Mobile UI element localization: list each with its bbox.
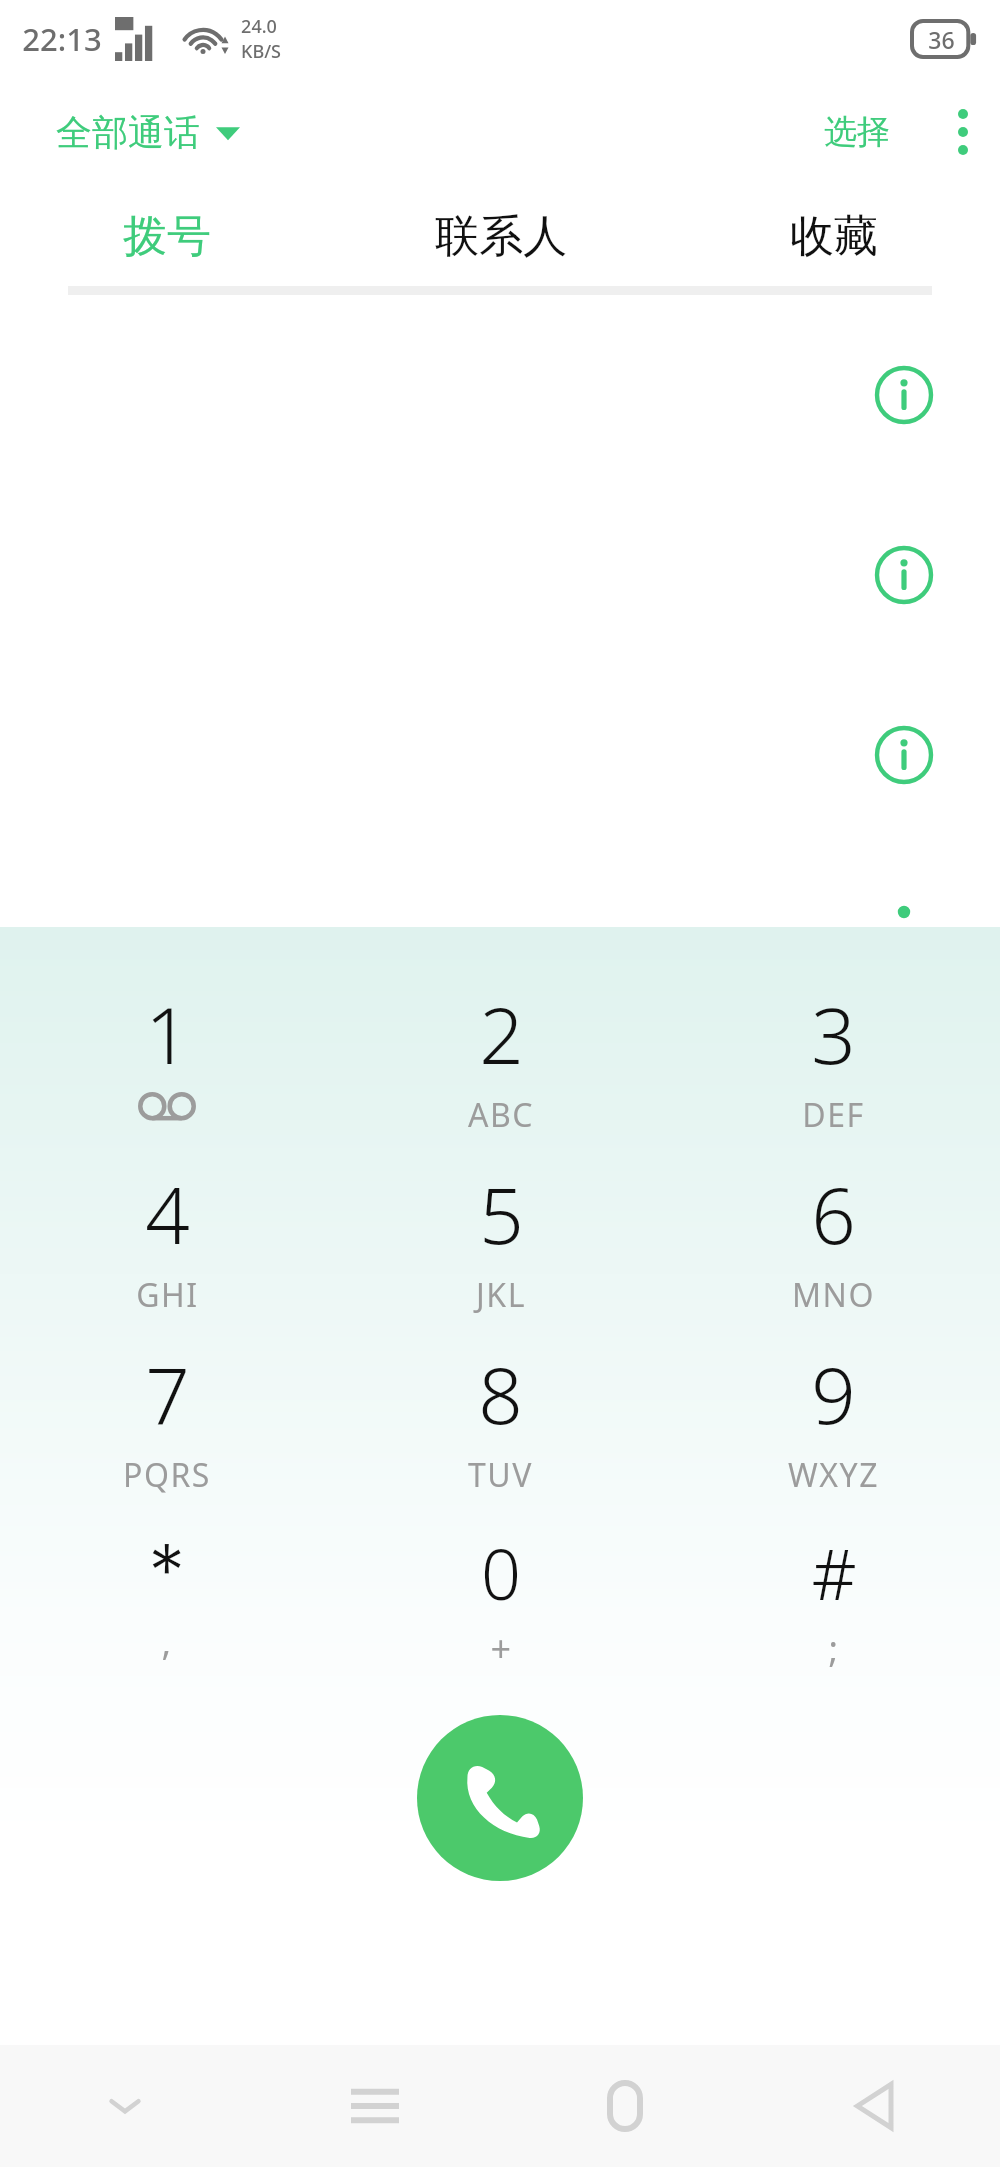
staticText: 选择 [824, 111, 890, 153]
button[interactable]: Call [417, 1715, 583, 1881]
button[interactable]: Call details [866, 537, 942, 613]
staticText: + [490, 1624, 513, 1673]
button[interactable]: Call details [866, 897, 942, 927]
button[interactable]: 3 [667, 969, 1000, 1149]
button[interactable]: ＊ [0, 1509, 334, 1689]
button[interactable]: 6 [667, 1149, 1000, 1329]
staticText: DEF [802, 1093, 865, 1137]
staticText: ; [828, 1624, 840, 1673]
button[interactable]: 4 [0, 1149, 334, 1329]
button[interactable]: 2 [334, 969, 667, 1149]
staticText: 2 [479, 981, 524, 1087]
button[interactable]: 拨号 [0, 186, 334, 286]
staticText: 收藏 [790, 209, 878, 264]
staticText: 7 [145, 1341, 190, 1447]
staticText: TUV [468, 1453, 533, 1497]
staticText: JKL [476, 1273, 526, 1317]
staticText: # [811, 1525, 857, 1620]
staticText: KB/S [241, 39, 281, 64]
staticText: 联系人 [435, 209, 567, 264]
button[interactable]: 全部通话 [50, 100, 246, 165]
button[interactable]: 8 [334, 1329, 667, 1509]
button[interactable]: Call details [866, 717, 942, 793]
button[interactable]: Home [500, 2045, 750, 2167]
staticText: ABC [468, 1093, 534, 1137]
staticText: 24.0 [241, 14, 277, 39]
button[interactable]: 7 [0, 1329, 334, 1509]
staticText: 拨号 [123, 209, 211, 264]
staticText: 9 [811, 1341, 856, 1447]
staticText: 3 [811, 981, 856, 1087]
staticText: GHI [136, 1273, 199, 1317]
button[interactable]: # [667, 1509, 1000, 1689]
button[interactable]: Back [750, 2045, 1000, 2167]
button[interactable]: 5 [334, 1149, 667, 1329]
staticText: 1 [145, 981, 190, 1087]
staticText: WXYZ [788, 1453, 879, 1497]
staticText: 6 [811, 1161, 856, 1267]
staticText: PQRS [123, 1453, 211, 1497]
button[interactable]: 1 [0, 969, 334, 1149]
staticText: ＊ [132, 1525, 202, 1613]
staticText: 36 [928, 24, 955, 55]
button[interactable]: Call details [866, 357, 942, 433]
staticText: 8 [478, 1341, 523, 1447]
staticText: 0 [481, 1525, 521, 1620]
staticText: 4 [145, 1161, 190, 1267]
button[interactable]: 0 [334, 1509, 667, 1689]
staticText: 22:13 [22, 18, 102, 60]
staticText: , [161, 1617, 173, 1666]
staticText: 全部通话 [56, 110, 200, 155]
staticText: 5 [479, 1161, 524, 1267]
staticText: MNO [792, 1273, 875, 1317]
button[interactable]: 收藏 [667, 186, 1000, 286]
button[interactable]: More options [936, 91, 990, 173]
button[interactable]: Menu [250, 2045, 500, 2167]
button[interactable]: 联系人 [334, 186, 667, 286]
button[interactable]: 选择 [808, 95, 906, 169]
button[interactable]: 9 [667, 1329, 1000, 1509]
